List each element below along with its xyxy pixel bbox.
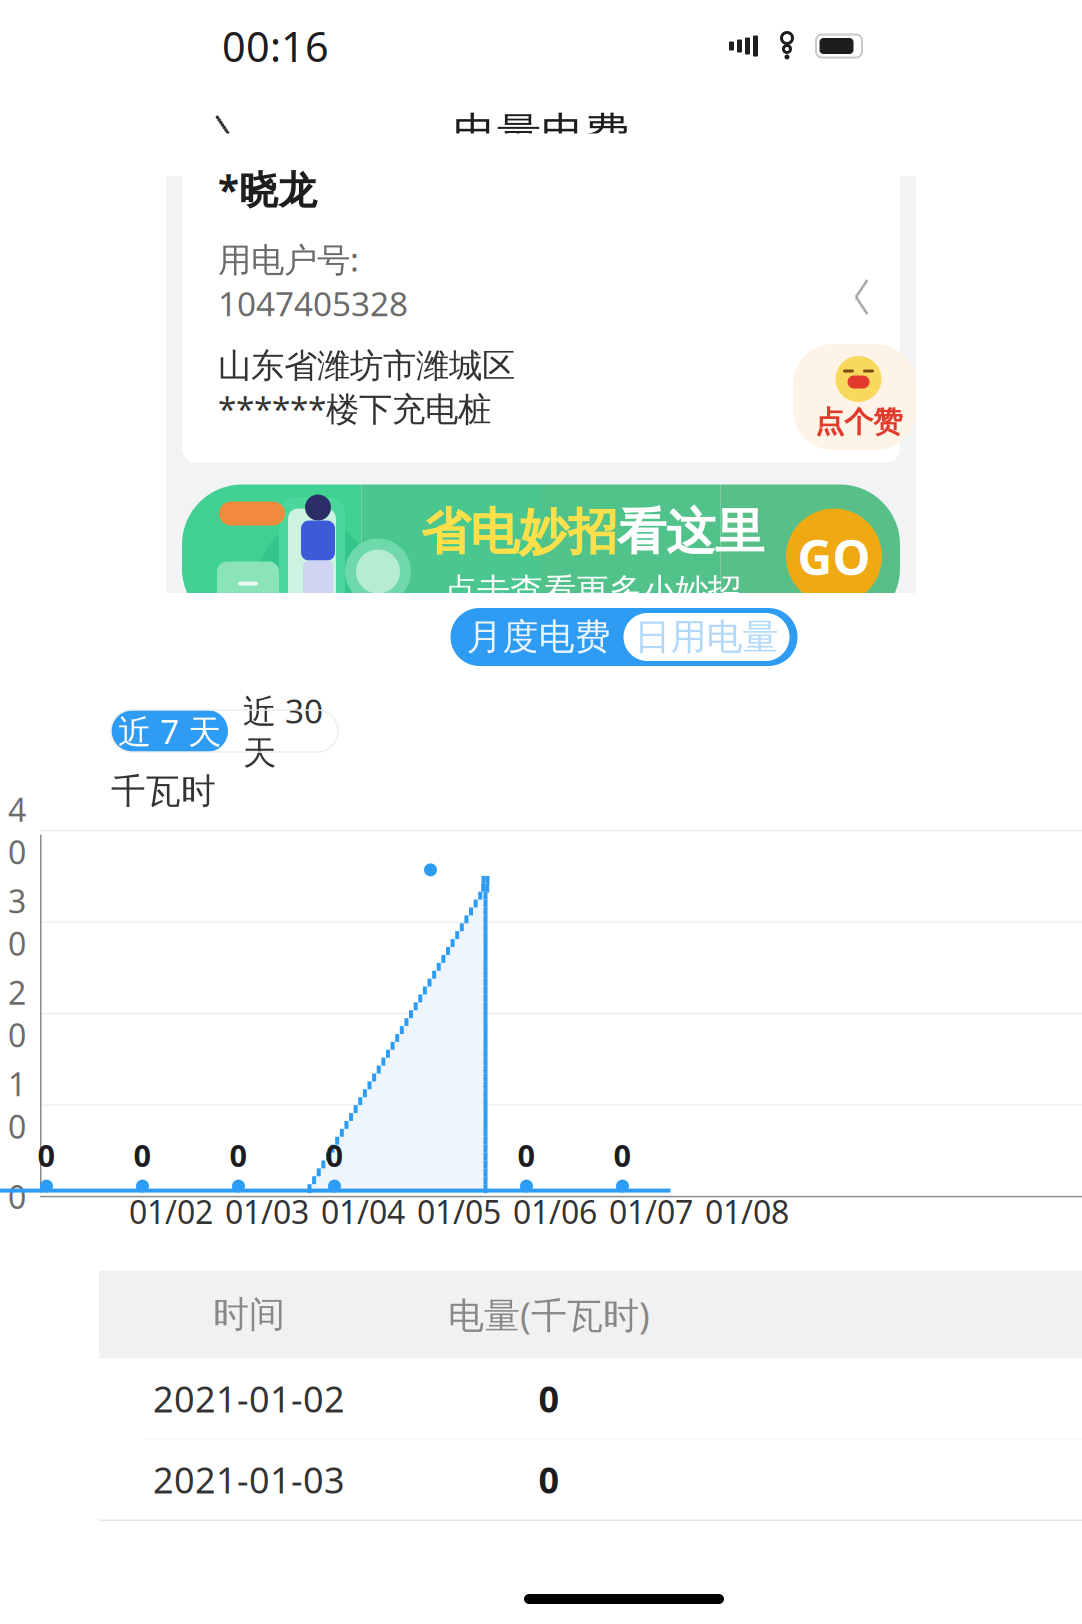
staticText: 0 [8,1175,26,1218]
staticText: 20 [8,971,26,1056]
staticText: 月度电费 [466,615,610,659]
staticText: 千瓦时 [111,770,216,813]
staticText: 10 [8,1063,26,1148]
staticText: 山东省潍坊市潍城区******楼下充电桩 [218,345,515,430]
staticText: 省电妙招 [421,502,617,562]
staticText: 2021-01-03 [153,1456,345,1503]
staticText: GO [797,525,870,588]
staticText: 时间 [213,1292,285,1337]
staticText: *晓龙 [218,163,317,215]
staticText: 0 [538,1375,559,1422]
staticText: 电量电费 [453,107,629,161]
staticText: 01/07 [609,1190,693,1233]
button[interactable]: 省电妙招 [182,484,900,628]
button[interactable]: 月度电费 [453,609,623,665]
staticText: 01/06 [513,1190,597,1233]
staticText: 01/04 [321,1190,405,1233]
staticText: 0 [325,1135,343,1176]
staticText: 01/05 [417,1190,501,1233]
button[interactable]: 2021-01-02 [99,1359,1082,1439]
staticText: 00:16 [222,19,329,73]
button[interactable]: *晓龙 [182,133,900,463]
button[interactable]: 返回 [188,99,258,169]
staticText: 01/02 [129,1190,213,1233]
staticText: 近 30 天 [243,688,323,774]
staticText: 01/08 [705,1190,789,1233]
staticText: 近 7 天 [118,709,221,753]
staticText: 日用电量 [634,615,778,659]
staticText: 点个赞 [815,404,902,440]
staticText: 0 [613,1135,631,1176]
staticText: 用电户号: 1047405328 [218,237,408,325]
staticText: 看这里 [617,502,764,562]
button[interactable]: 日用电量 [623,613,789,661]
staticText: 0 [37,1135,55,1176]
button[interactable]: 2021-01-03 [99,1440,1082,1520]
button[interactable]: 点个赞 [793,344,916,450]
staticText: 0 [133,1135,151,1176]
button[interactable]: 近 7 天 [111,710,228,752]
staticText: 30 [8,880,26,965]
button[interactable]: 近 30 天 [228,710,338,752]
staticText: 0 [517,1135,535,1176]
staticText: 0 [229,1135,247,1176]
staticText: 电量(千瓦时) [448,1291,650,1338]
staticText: 40 [8,788,26,873]
staticText: 2021-01-02 [153,1375,345,1422]
staticText: 01/03 [225,1190,309,1233]
staticText: 点击查看更多小妙招 [444,570,741,611]
staticText: 0 [538,1456,559,1503]
